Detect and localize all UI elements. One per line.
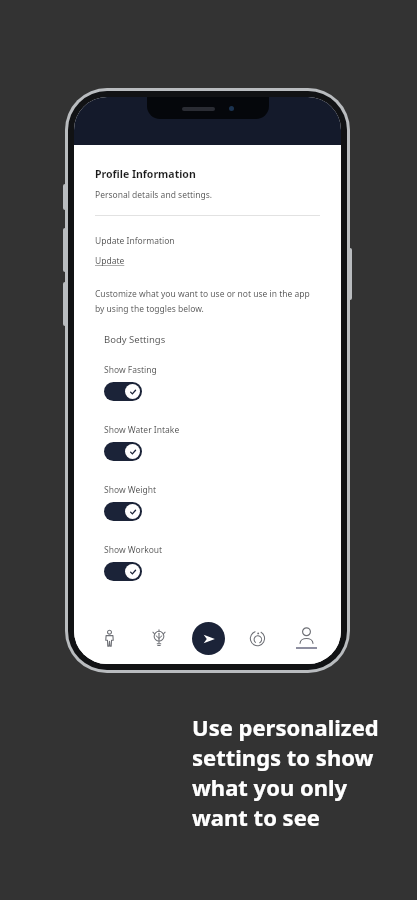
button[interactable]: Show Weight: [104, 502, 142, 521]
staticText: Show Workout: [104, 544, 163, 556]
staticText: want to see: [192, 802, 320, 832]
staticText: Use personalized: [192, 712, 379, 742]
button[interactable]: Profile: [282, 612, 331, 664]
button[interactable]: Show Water Intake: [104, 442, 142, 461]
staticText: Profile Information: [95, 167, 196, 181]
staticText: Update: [95, 255, 125, 267]
button[interactable]: Insights: [134, 612, 184, 664]
staticText: what you only: [192, 772, 348, 802]
button[interactable]: Show Fasting: [104, 382, 142, 401]
button[interactable]: Update: [95, 255, 125, 267]
staticText: Update Information: [95, 235, 175, 247]
button[interactable]: Start: [184, 612, 233, 664]
staticText: Show Fasting: [104, 364, 157, 376]
staticText: Show Weight: [104, 484, 157, 496]
button[interactable]: Body: [84, 612, 134, 664]
staticText: Customize what you want to use or not us…: [95, 288, 320, 314]
button[interactable]: Show Workout: [104, 562, 142, 581]
button[interactable]: Activity: [233, 612, 282, 664]
staticText: settings to show: [192, 742, 374, 772]
staticText: Personal details and settings.: [95, 189, 213, 201]
staticText: Body Settings: [104, 333, 166, 346]
staticText: Show Water Intake: [104, 424, 180, 436]
